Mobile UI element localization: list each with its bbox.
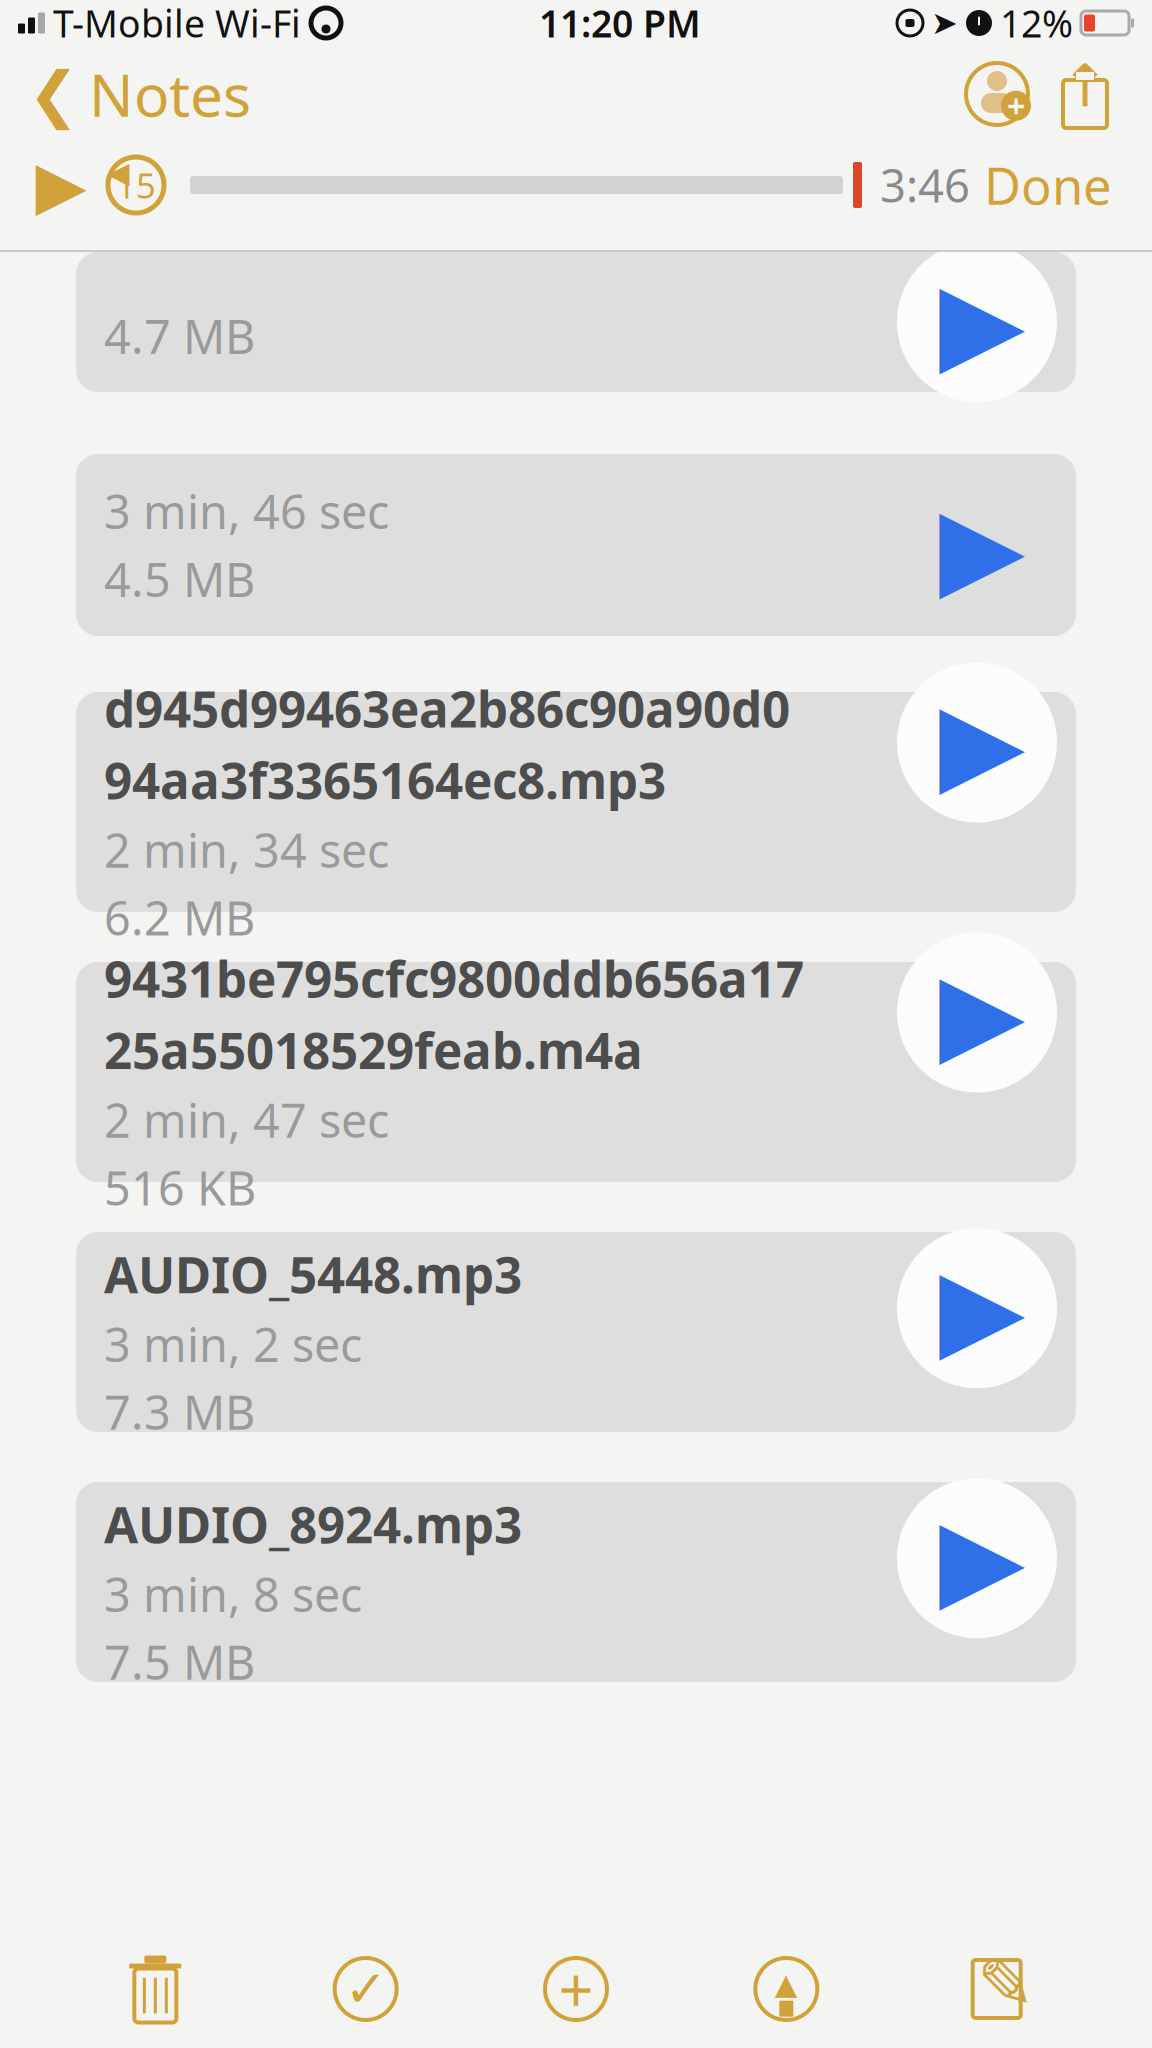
staticText: 7.3 MB	[104, 1381, 255, 1443]
staticText: 3 min, 8 sec	[104, 1563, 362, 1625]
button[interactable]: Play audio	[892, 237, 1062, 407]
staticText: 12%	[1000, 0, 1073, 48]
button[interactable]	[76, 252, 1076, 392]
button[interactable]: 9431be795cfc9800ddb656a17	[76, 962, 1076, 1182]
staticText: 15	[116, 162, 156, 208]
button[interactable]: Checklist	[311, 1944, 421, 2034]
staticText: ◀	[107, 156, 130, 189]
staticText: ▶	[939, 949, 1025, 1076]
staticText: ✎	[977, 1945, 1035, 2023]
button[interactable]: Play audio	[892, 1223, 1062, 1393]
staticText: ➤	[931, 5, 958, 41]
staticText: 4.5 MB	[104, 548, 255, 610]
staticText: 2 min, 34 sec	[104, 818, 389, 880]
button[interactable]: d945d99463ea2b86c90a90d0	[76, 692, 1076, 912]
staticText: 2 min, 47 sec	[104, 1088, 389, 1150]
button[interactable]: Play audio	[892, 927, 1062, 1097]
button[interactable]: Play audio	[892, 657, 1062, 827]
staticText: 4.7 MB	[104, 305, 255, 367]
staticText: 3 min, 46 sec	[104, 480, 389, 542]
button[interactable]: Play	[26, 150, 96, 220]
button[interactable]: Add attachment	[521, 1944, 631, 2034]
staticText: 7.5 MB	[104, 1631, 255, 1693]
button[interactable]: AUDIO_8924.mp3	[76, 1482, 1076, 1682]
staticText: 11:20 PM	[539, 0, 701, 48]
staticText: +	[558, 1948, 593, 2030]
button[interactable]: AUDIO_5448.mp3	[76, 1232, 1076, 1432]
button[interactable]: Done	[970, 143, 1126, 227]
button[interactable]: Play audio	[892, 1473, 1062, 1643]
button[interactable]: Skip back 15 seconds	[96, 149, 176, 221]
staticText: 3:46	[880, 155, 970, 215]
staticText: ▲	[775, 1967, 798, 2001]
staticText: ▶	[939, 679, 1025, 806]
button[interactable]: Markup	[731, 1944, 841, 2034]
button[interactable]: Play audio	[892, 462, 1062, 632]
staticText: Notes	[89, 55, 251, 133]
staticText: ▶	[35, 147, 86, 223]
staticText: 94aa3f3365164ec8.mp3	[104, 747, 666, 812]
staticText: Done	[984, 151, 1112, 219]
staticText: 9431be795cfc9800ddb656a17	[104, 945, 804, 1011]
staticText: T-Mobile Wi-Fi	[53, 0, 301, 48]
staticText: +	[1007, 84, 1025, 127]
button[interactable]: Share	[1042, 54, 1128, 134]
staticText: ▶	[939, 483, 1025, 610]
button[interactable]: Compose	[942, 1944, 1052, 2034]
button[interactable]: 3 min, 46 sec	[76, 454, 1076, 636]
staticText: ↑	[1060, 53, 1109, 119]
staticText: ✓	[345, 1960, 387, 2018]
staticText: 25a55018529feab.m4a	[104, 1017, 643, 1082]
staticText: ❮	[28, 59, 79, 129]
staticText: 6.2 MB	[104, 886, 255, 948]
staticText: d945d99463ea2b86c90a90d0	[104, 675, 790, 741]
button[interactable]: ❮	[14, 45, 265, 143]
staticText: ▶	[939, 1495, 1025, 1622]
staticText: AUDIO_8924.mp3	[104, 1491, 522, 1557]
button[interactable]: Add People	[952, 54, 1042, 134]
staticText: 3 min, 2 sec	[104, 1313, 362, 1375]
button[interactable]: Delete	[100, 1944, 210, 2034]
staticText: ▶	[939, 1245, 1025, 1372]
staticText: AUDIO_5448.mp3	[104, 1241, 522, 1307]
staticText: 516 KB	[104, 1156, 256, 1218]
staticText: ▶	[939, 258, 1025, 385]
